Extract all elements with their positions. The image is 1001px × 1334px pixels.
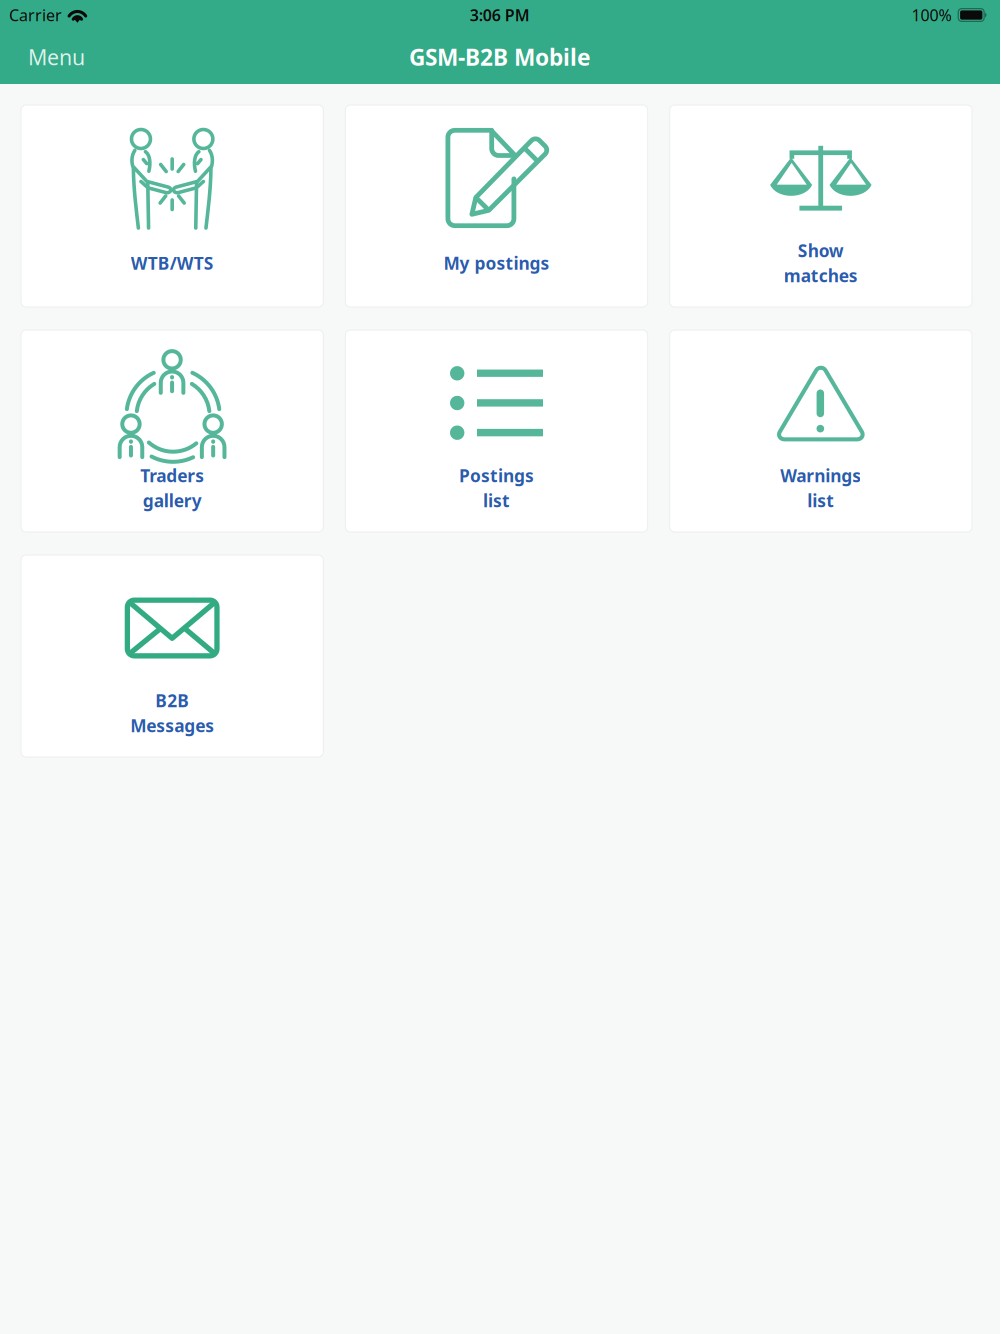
staticText: matches <box>784 264 858 287</box>
staticText: Menu <box>28 43 85 71</box>
staticText: My postings <box>443 251 549 274</box>
staticText: Postings <box>459 464 534 487</box>
button[interactable]: B2B <box>21 555 323 757</box>
button[interactable]: WTB/WTS <box>21 105 323 307</box>
staticText: Warnings <box>780 464 861 487</box>
staticText: 3:06 PM <box>470 4 530 26</box>
button[interactable]: Warnings <box>670 330 972 532</box>
staticText: GSM-B2B Mobile <box>409 42 591 72</box>
staticText: list <box>807 489 834 512</box>
staticText: gallery <box>143 489 202 512</box>
staticText: B2B <box>155 689 189 712</box>
button[interactable]: Menu <box>0 31 113 83</box>
staticText: list <box>483 489 510 512</box>
button[interactable]: Traders <box>21 330 323 532</box>
staticText: WTB/WTS <box>131 251 214 274</box>
button[interactable]: Postings <box>345 330 648 532</box>
staticText: Show <box>798 239 844 262</box>
staticText: Carrier <box>9 4 62 26</box>
button[interactable]: Show <box>670 105 972 307</box>
button[interactable]: My postings <box>345 105 648 307</box>
staticText: 100% <box>912 4 952 26</box>
staticText: Traders <box>140 464 204 487</box>
staticText: Messages <box>130 714 214 737</box>
